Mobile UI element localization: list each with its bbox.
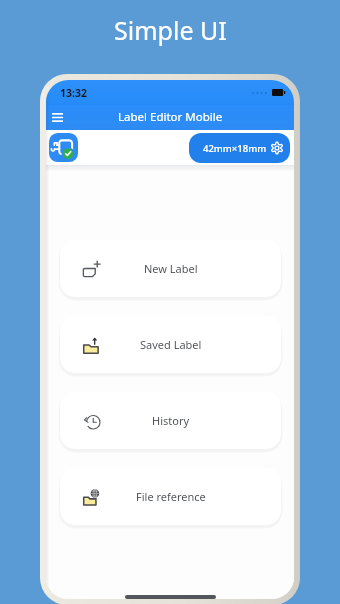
staticText: Simple UI xyxy=(114,13,227,47)
staticText: 13:32 xyxy=(60,86,87,100)
button[interactable]: History xyxy=(60,392,281,449)
staticText: File reference xyxy=(136,489,206,504)
staticText: Label Editor Mobile xyxy=(118,109,223,125)
button[interactable]: Saved Label xyxy=(60,316,281,373)
button[interactable]: Printer connected xyxy=(49,133,78,162)
button[interactable]: New Label xyxy=(60,240,281,297)
staticText: 42mm×18mm xyxy=(203,142,267,155)
button[interactable]: 42mm×18mm xyxy=(189,133,290,163)
staticText: New Label xyxy=(144,261,198,276)
staticText: History xyxy=(152,413,190,428)
button[interactable]: File reference xyxy=(60,468,281,525)
button[interactable]: Menu xyxy=(47,107,68,128)
staticText: Saved Label xyxy=(140,337,202,352)
